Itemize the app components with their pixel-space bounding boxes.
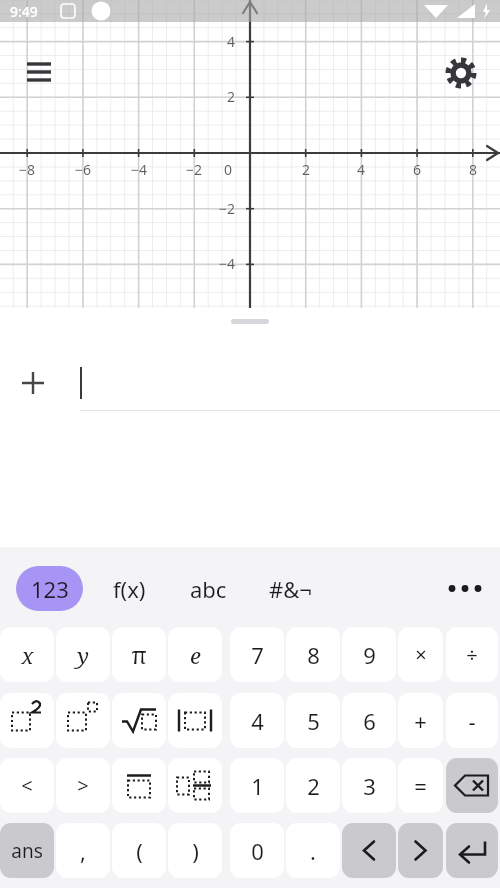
staticText: ×: [415, 641, 427, 668]
staticText: 4: [227, 32, 236, 51]
staticText: 9: [363, 640, 376, 670]
button[interactable]: 7: [230, 627, 284, 682]
staticText: 6: [363, 706, 376, 736]
staticText: (: [136, 836, 143, 866]
button[interactable]: #&¬: [252, 566, 328, 611]
staticText: −4: [131, 160, 148, 179]
staticText: y: [77, 640, 89, 670]
button[interactable]: Square root: [112, 693, 166, 748]
staticText: −8: [19, 160, 36, 179]
button[interactable]: f(x): [98, 566, 160, 611]
staticText: #&¬: [269, 574, 312, 604]
staticText: abc: [190, 574, 227, 604]
button[interactable]: 4: [230, 693, 284, 748]
staticText: >: [77, 772, 89, 799]
button[interactable]: 6: [342, 693, 396, 748]
button[interactable]: ): [168, 823, 222, 878]
button[interactable]: -: [446, 693, 498, 748]
staticText: 9:49: [10, 2, 38, 21]
staticText: −2: [219, 199, 236, 218]
staticText: 7: [251, 640, 264, 670]
staticText: π: [131, 638, 147, 671]
staticText: 5: [307, 706, 320, 736]
button[interactable]: >: [56, 758, 110, 813]
button[interactable]: 2: [286, 758, 340, 813]
staticText: 8: [469, 160, 478, 179]
button[interactable]: ×: [398, 627, 443, 682]
staticText: +: [414, 706, 427, 736]
button[interactable]: Cursor left: [342, 823, 396, 878]
button[interactable]: 123: [16, 566, 83, 611]
button[interactable]: abc: [175, 566, 241, 611]
button[interactable]: Square: [0, 693, 54, 748]
staticText: −2: [186, 160, 203, 179]
staticText: 3: [363, 771, 376, 801]
button[interactable]: Cursor right: [398, 823, 443, 878]
button[interactable]: 3: [342, 758, 396, 813]
staticText: ÷: [466, 641, 478, 668]
button[interactable]: 9: [342, 627, 396, 682]
button[interactable]: Fraction: [112, 758, 166, 813]
staticText: −4: [219, 254, 236, 273]
button[interactable]: 0: [230, 823, 284, 878]
staticText: 0: [224, 160, 233, 179]
button[interactable]: 5: [286, 693, 340, 748]
button[interactable]: +: [398, 693, 443, 748]
staticText: ,: [80, 836, 86, 866]
button[interactable]: =: [398, 758, 443, 813]
button[interactable]: ÷: [446, 627, 498, 682]
button[interactable]: Power: [56, 693, 110, 748]
staticText: ans: [11, 838, 43, 864]
button[interactable]: Enter: [446, 823, 498, 878]
staticText: 2: [227, 87, 236, 106]
button[interactable]: x: [0, 627, 54, 682]
button[interactable]: Absolute value: [168, 693, 222, 748]
button[interactable]: ans: [0, 823, 54, 878]
staticText: 0: [251, 836, 264, 866]
staticText: .: [310, 836, 316, 866]
button[interactable]: Settings: [440, 52, 482, 94]
staticText: 8: [307, 640, 320, 670]
button[interactable]: .: [286, 823, 340, 878]
button[interactable]: ,: [56, 823, 110, 878]
staticText: ): [192, 836, 199, 866]
staticText: x: [21, 640, 34, 670]
staticText: −6: [75, 160, 92, 179]
button[interactable]: 1: [230, 758, 284, 813]
button[interactable]: π: [112, 627, 166, 682]
staticText: 2: [307, 771, 320, 801]
button[interactable]: Menu: [18, 52, 60, 94]
button[interactable]: <: [0, 758, 54, 813]
staticText: e: [190, 640, 201, 670]
staticText: 1: [251, 771, 264, 801]
button[interactable]: Backspace: [446, 758, 498, 813]
staticText: 2: [302, 160, 311, 179]
button[interactable]: e: [168, 627, 222, 682]
staticText: f(x): [113, 574, 146, 604]
staticText: 6: [413, 160, 422, 179]
button[interactable]: Mixed number: [168, 758, 222, 813]
staticText: 4: [357, 160, 366, 179]
button[interactable]: (: [112, 823, 166, 878]
button[interactable]: More options: [440, 566, 490, 611]
staticText: =: [414, 771, 427, 801]
staticText: 123: [31, 574, 69, 604]
button[interactable]: y: [56, 627, 110, 682]
staticText: 4: [251, 706, 264, 736]
button[interactable]: Add expression: [13, 363, 53, 403]
staticText: -: [468, 706, 476, 736]
staticText: <: [21, 772, 33, 799]
button[interactable]: 8: [286, 627, 340, 682]
